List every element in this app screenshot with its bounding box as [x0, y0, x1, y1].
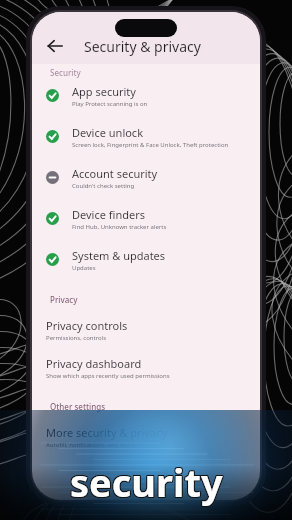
button[interactable]: System & updates — [32, 239, 260, 280]
button[interactable]: Device unlock — [32, 116, 260, 157]
staticText: security — [69, 456, 222, 508]
staticText: Privacy controls — [46, 318, 128, 333]
button[interactable]: Privacy dashboard — [32, 349, 260, 387]
staticText: security — [71, 456, 224, 508]
staticText: Updates — [72, 264, 96, 272]
staticText: App security — [72, 84, 136, 99]
staticText: Security — [50, 67, 81, 78]
staticText: More security & privacy — [46, 425, 168, 440]
staticText: Device finders — [72, 207, 145, 222]
staticText: Permissions, controls — [46, 334, 107, 342]
staticText: Autofill, notifications, and more — [46, 441, 135, 449]
staticText: Screen lock, Fingerprint & Face Unlock, … — [72, 141, 229, 149]
staticText: Security & privacy — [84, 37, 201, 56]
staticText: Privacy — [50, 294, 78, 305]
button[interactable]: Account security — [32, 157, 260, 198]
button[interactable]: App security — [32, 75, 260, 116]
staticText: security — [70, 457, 223, 509]
staticText: security — [70, 456, 223, 508]
button[interactable]: Privacy controls — [32, 311, 260, 349]
button[interactable]: More security & privacy — [32, 418, 260, 456]
staticText: Other settings — [50, 401, 106, 412]
staticText: Show which apps recently used permission… — [46, 372, 170, 380]
button[interactable]: Device finders — [32, 198, 260, 239]
staticText: security — [70, 455, 223, 507]
staticText: Find Hub, Unknown tracker alerts — [72, 223, 167, 231]
staticText: System & updates — [72, 248, 166, 263]
staticText: security — [69, 457, 222, 509]
button[interactable]: Back — [40, 31, 70, 61]
staticText: Privacy dashboard — [46, 356, 142, 371]
staticText: Couldn't check setting — [72, 182, 135, 190]
staticText: security — [71, 457, 224, 509]
staticText: security — [71, 455, 224, 507]
staticText: security — [69, 455, 222, 507]
staticText: Device unlock — [72, 125, 144, 140]
staticText: Account security — [72, 166, 158, 181]
staticText: Play Protect scanning is on — [72, 100, 148, 108]
